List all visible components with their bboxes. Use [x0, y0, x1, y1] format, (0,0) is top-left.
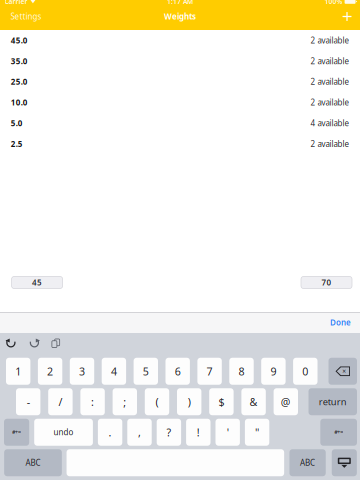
- staticText: Settings: [10, 11, 41, 22]
- button[interactable]: 3: [70, 358, 94, 385]
- button[interactable]: ;: [113, 388, 137, 415]
- staticText: 4 available: [310, 118, 349, 128]
- button[interactable]: -: [16, 388, 40, 415]
- button[interactable]: Undo: [3, 335, 19, 351]
- button[interactable]: 2: [38, 358, 62, 385]
- button[interactable]: return: [308, 388, 357, 415]
- staticText: 2 available: [310, 35, 349, 46]
- button[interactable]: ?: [157, 419, 181, 446]
- button[interactable]: Done: [330, 312, 360, 332]
- button[interactable]: 0: [293, 358, 317, 385]
- button[interactable]: &: [241, 388, 266, 415]
- button[interactable]: ": [245, 419, 269, 446]
- button[interactable]: 45: [12, 276, 63, 288]
- staticText: 5: [143, 364, 149, 378]
- staticText: Carrier: [5, 0, 28, 6]
- button[interactable]: Settings: [0, 7, 47, 26]
- button[interactable]: .: [98, 419, 122, 446]
- staticText: !: [197, 425, 200, 439]
- button[interactable]: Hide keyboard: [332, 449, 357, 476]
- staticText: 2 available: [310, 56, 349, 66]
- staticText: 100%: [324, 0, 342, 6]
- staticText: -: [27, 395, 30, 409]
- button[interactable]: @: [274, 388, 298, 415]
- staticText: 9: [270, 364, 276, 378]
- button[interactable]: 10.0: [0, 92, 360, 113]
- button[interactable]: ': [215, 419, 240, 446]
- staticText: (: [155, 395, 158, 409]
- staticText: return: [319, 396, 347, 408]
- staticText: ': [227, 425, 229, 439]
- button[interactable]: 6: [165, 358, 190, 385]
- staticText: ;: [123, 395, 126, 409]
- staticText: 2.5: [11, 138, 23, 149]
- button[interactable]: /: [48, 388, 73, 415]
- staticText: 25.0: [11, 76, 28, 87]
- button[interactable]: Redo: [26, 335, 42, 351]
- staticText: 45.0: [11, 35, 28, 46]
- staticText: Weights: [164, 11, 196, 22]
- staticText: 2 available: [310, 138, 349, 149]
- button[interactable]: More symbols: [4, 419, 29, 446]
- staticText: .: [109, 425, 112, 439]
- button[interactable]: More symbols: [320, 419, 357, 446]
- button[interactable]: undo: [34, 419, 93, 446]
- staticText: 8: [238, 364, 244, 378]
- staticText: ×: [342, 367, 346, 376]
- button[interactable]: Add weight: [335, 7, 359, 26]
- button[interactable]: 70: [301, 276, 352, 288]
- staticText: ABC: [300, 457, 315, 468]
- button[interactable]: 4: [102, 358, 126, 385]
- staticText: ?: [166, 425, 171, 439]
- staticText: 70: [321, 277, 331, 288]
- staticText: &: [250, 395, 258, 409]
- staticText: #+=: [12, 429, 21, 436]
- staticText: 2: [47, 364, 53, 378]
- button[interactable]: ABC: [4, 449, 62, 476]
- staticText: :: [91, 395, 94, 409]
- button[interactable]: ABC: [289, 449, 326, 476]
- button[interactable]: 25.0: [0, 71, 360, 92]
- button[interactable]: (: [145, 388, 169, 415]
- staticText: 5.0: [11, 118, 23, 128]
- button[interactable]: space: [66, 449, 284, 476]
- staticText: 45: [32, 277, 42, 288]
- staticText: 7: [207, 364, 213, 378]
- button[interactable]: $: [209, 388, 234, 415]
- staticText: 4: [111, 364, 117, 378]
- staticText: ": [255, 425, 259, 439]
- staticText: 6: [175, 364, 181, 378]
- button[interactable]: !: [186, 419, 210, 446]
- staticText: #+=: [334, 429, 343, 436]
- staticText: $: [218, 395, 224, 409]
- staticText: 1:17 AM: [167, 0, 193, 6]
- button[interactable]: ,: [127, 419, 152, 446]
- staticText: @: [281, 395, 291, 409]
- staticText: undo: [53, 427, 73, 437]
- staticText: 35.0: [11, 56, 28, 66]
- staticText: 2 available: [310, 76, 349, 87]
- staticText: 10.0: [11, 97, 28, 108]
- button[interactable]: 7: [197, 358, 222, 385]
- button[interactable]: 35.0: [0, 51, 360, 71]
- button[interactable]: 45.0: [0, 30, 360, 51]
- staticText: Done: [330, 317, 351, 328]
- button[interactable]: 2.5: [0, 133, 360, 154]
- staticText: ): [188, 395, 191, 409]
- button[interactable]: 5: [134, 358, 158, 385]
- staticText: ,: [138, 425, 141, 439]
- button[interactable]: 1: [6, 358, 30, 385]
- staticText: 0: [302, 364, 308, 378]
- staticText: 2 available: [310, 97, 349, 108]
- button[interactable]: 9: [261, 358, 286, 385]
- button[interactable]: Delete: [328, 358, 357, 385]
- button[interactable]: ): [177, 388, 201, 415]
- button[interactable]: :: [80, 388, 105, 415]
- staticText: 1: [15, 364, 21, 378]
- button[interactable]: Paste: [47, 335, 63, 351]
- staticText: 3: [79, 364, 85, 378]
- staticText: /: [58, 395, 62, 409]
- staticText: ABC: [25, 457, 40, 468]
- button[interactable]: 5.0: [0, 113, 360, 133]
- button[interactable]: 8: [229, 358, 254, 385]
